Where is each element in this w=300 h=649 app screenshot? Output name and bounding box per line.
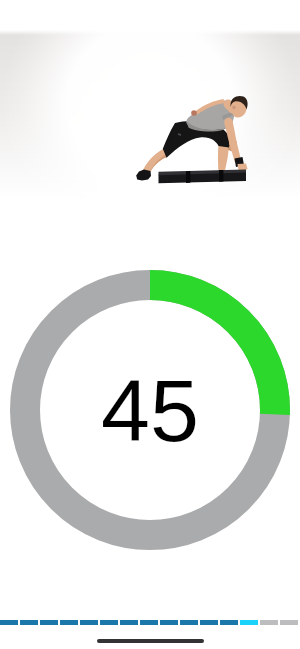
staticText: 45 bbox=[101, 361, 199, 459]
button[interactable]: Timer 45 seconds remaining bbox=[10, 270, 290, 550]
button[interactable]: Exercise demonstration bbox=[0, 0, 300, 240]
button[interactable]: Workout progress bbox=[0, 620, 300, 625]
